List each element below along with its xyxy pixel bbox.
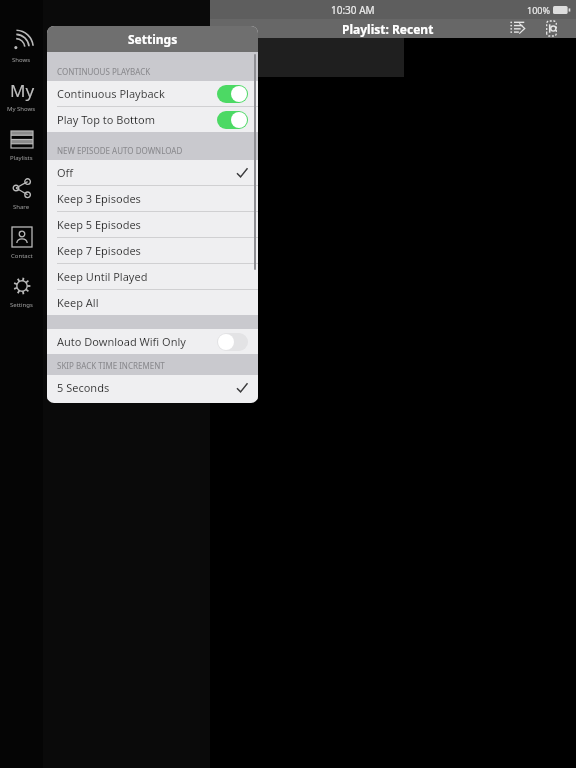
staticText: 100% [527, 4, 550, 16]
staticText: CONTINUOUS PLAYBACK [57, 66, 151, 77]
staticText: 10:30 AM [331, 3, 375, 17]
staticText: SKIP BACK TIME INCREMENT [57, 360, 165, 371]
staticText: Keep 3 Episodes [57, 191, 248, 206]
staticText: Keep All [57, 295, 248, 310]
button[interactable]: Keep 7 Episodes [47, 238, 258, 263]
staticText: My [10, 79, 35, 102]
button[interactable]: Contact [0, 222, 43, 262]
staticText: Keep 7 Episodes [57, 243, 248, 258]
staticText: My Shows [7, 105, 36, 113]
button[interactable]: Now playing [540, 19, 562, 38]
staticText: Settings [10, 301, 33, 309]
staticText: Off [57, 165, 236, 180]
button[interactable]: 5 Seconds [47, 375, 258, 400]
button[interactable]: Share [0, 173, 43, 213]
staticText: Settings [128, 31, 178, 47]
staticText: Share [13, 203, 30, 211]
button[interactable]: Edit playlist order [506, 19, 528, 38]
button[interactable]: Playlists [0, 124, 43, 164]
button[interactable]: Auto Download Wifi Only [47, 329, 258, 354]
staticText: 5 Seconds [57, 380, 236, 395]
staticText: NEW EPISODE AUTO DOWNLOAD [57, 145, 183, 156]
staticText: Playlists [10, 154, 33, 162]
button[interactable]: Keep 5 Episodes [47, 212, 258, 237]
button[interactable]: My [0, 75, 43, 115]
staticText: Continuous Playback [57, 86, 217, 101]
button[interactable]: Off [47, 160, 258, 185]
button[interactable]: Settings [0, 271, 43, 311]
button[interactable]: Play Top to Bottom [47, 107, 258, 132]
staticText: Play Top to Bottom [57, 112, 217, 127]
staticText: Contact [11, 252, 33, 260]
staticText: Keep Until Played [57, 269, 248, 284]
button[interactable]: Continuous Playback [47, 81, 258, 106]
staticText: Auto Download Wifi Only [57, 334, 217, 349]
staticText: Keep 5 Episodes [57, 217, 248, 232]
button[interactable]: Shows [0, 26, 43, 66]
staticText: Playlist: Recent [342, 21, 434, 37]
button[interactable]: Keep Until Played [47, 264, 258, 289]
button[interactable]: Keep All [47, 290, 258, 315]
button[interactable]: Keep 3 Episodes [47, 186, 258, 211]
staticText: Shows [12, 56, 31, 64]
